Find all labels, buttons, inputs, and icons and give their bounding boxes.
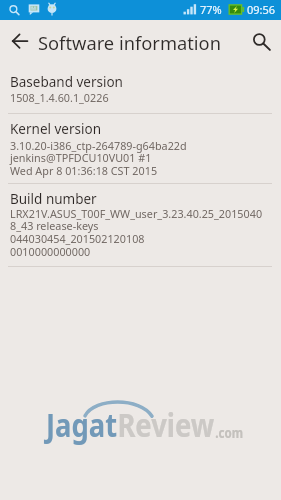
button[interactable]: Kernel version	[0, 114, 281, 183]
staticText: 77%	[200, 2, 222, 17]
staticText: Build number	[10, 190, 97, 208]
staticText: .com	[215, 423, 243, 442]
button[interactable]: Baseband version	[0, 62, 281, 113]
staticText: Jagat	[46, 402, 117, 447]
button[interactable]: Build number	[0, 184, 281, 266]
staticText: Software information	[38, 30, 221, 55]
staticText: LRX21V.ASUS_T00F_WW_user_3.23.40.25_2015…	[10, 206, 263, 259]
staticText: Review	[117, 402, 214, 447]
staticText: 09:56	[247, 2, 276, 17]
staticText: Baseband version	[10, 73, 123, 91]
button[interactable]: Search	[243, 20, 279, 62]
button[interactable]: Navigate up	[2, 20, 38, 62]
staticText: Kernel version	[10, 120, 102, 138]
staticText: 1508_1.4.60.1_0226	[10, 90, 109, 105]
staticText: 3.10.20-i386_ctp-264789-g64ba22d jenkins…	[10, 138, 187, 178]
